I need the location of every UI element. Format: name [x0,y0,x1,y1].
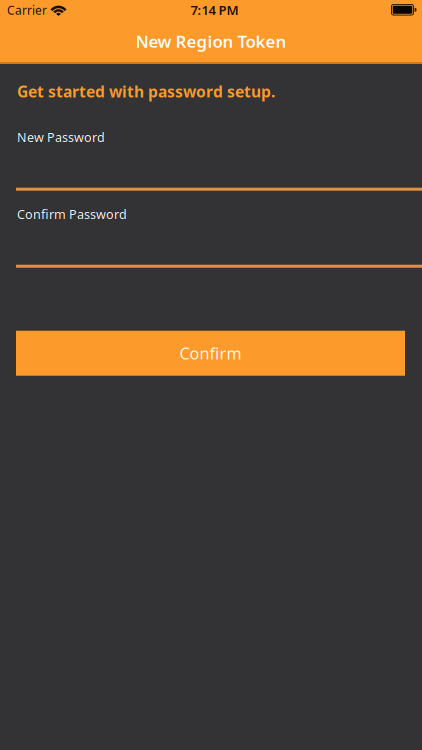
staticText: Confirm [179,342,241,364]
staticText: New Password [17,129,105,145]
staticText: Confirm Password [17,206,127,222]
staticText: 7:14 PM [190,1,238,19]
staticText: Carrier [7,2,47,18]
button[interactable]: Confirm Password [0,206,422,268]
button[interactable]: New Password [0,129,422,191]
staticText: Get started with password setup. [17,81,275,102]
button[interactable]: Confirm [16,331,405,376]
staticText: New Region Token [135,30,286,52]
